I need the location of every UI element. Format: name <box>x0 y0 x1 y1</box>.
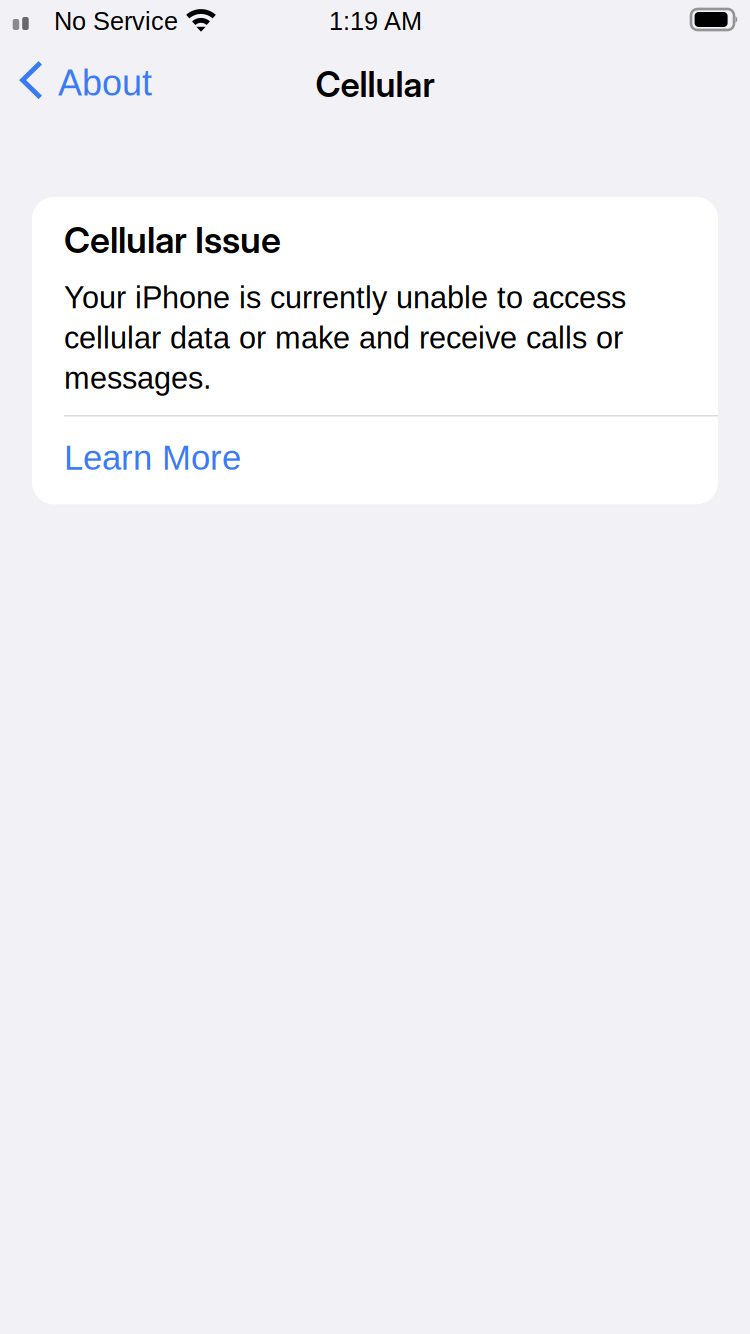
staticText: No Service <box>54 7 178 35</box>
staticText: Your iPhone is currently unable to acces… <box>64 281 626 395</box>
button[interactable]: About <box>0 39 190 96</box>
staticText: 1:19 AM <box>329 7 422 35</box>
staticText: Cellular Issue <box>64 218 281 262</box>
staticText: Cellular <box>315 63 434 105</box>
staticText: About <box>58 63 152 103</box>
staticText: Learn More <box>64 438 241 477</box>
button[interactable]: Learn More <box>32 416 718 504</box>
